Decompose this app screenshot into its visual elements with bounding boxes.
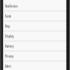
staticText: Display (5, 34, 14, 37)
button[interactable]: Privacy (0, 50, 70, 60)
staticText: Notifiction (5, 5, 18, 8)
staticText: Notifiction (5, 4, 18, 7)
staticText: Display (5, 35, 14, 38)
staticText: Display (5, 34, 14, 37)
staticText: Battery (5, 44, 14, 47)
staticText: Display (5, 35, 14, 38)
staticText: Abot (5, 65, 11, 68)
staticText: Slep (5, 25, 11, 28)
button[interactable]: Display (0, 30, 70, 40)
button[interactable]: Battery (0, 40, 70, 50)
button[interactable]: Sond (0, 10, 70, 20)
staticText: Slep (5, 24, 11, 27)
staticText: Privacy (5, 54, 14, 57)
staticText: Abot (5, 64, 11, 67)
staticText: Notifiction (5, 5, 18, 8)
staticText: Notifiction (5, 4, 18, 7)
button[interactable]: Notifiction (0, 0, 70, 10)
staticText: Privacy (5, 55, 14, 58)
staticText: Abot (5, 65, 11, 68)
staticText: Battery (5, 44, 14, 47)
staticText: Sond (5, 15, 12, 18)
staticText: Battery (5, 45, 14, 48)
staticText: Privacy (5, 54, 14, 57)
button[interactable]: Slep (0, 20, 70, 30)
staticText: Battery (5, 45, 14, 48)
staticText: Slep (5, 25, 11, 28)
staticText: Abot (5, 64, 11, 67)
staticText: Sond (5, 14, 12, 17)
staticText: Sond (5, 15, 12, 18)
staticText: Sond (5, 14, 12, 17)
button[interactable]: Abot (0, 60, 70, 70)
staticText: Slep (5, 24, 11, 27)
staticText: Privacy (5, 55, 14, 58)
